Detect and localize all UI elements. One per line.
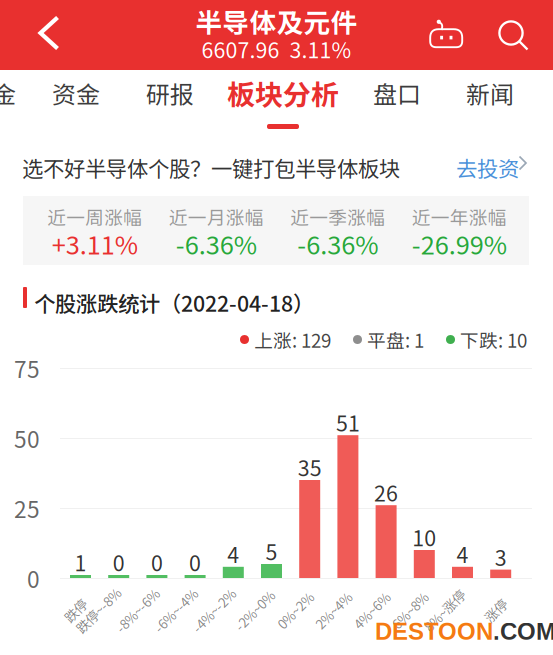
staticText: 涨停 [483, 601, 509, 620]
staticText: +3.11% [52, 225, 138, 262]
staticText: 75 [14, 352, 40, 384]
staticText: 板块分析 [227, 73, 339, 113]
staticText: 35 [298, 452, 322, 482]
staticText: -2%~0% [229, 601, 279, 620]
staticText: 选不好半导体个股？一键打包半导体板块 [22, 152, 400, 183]
button[interactable]: 新闻 [456, 70, 524, 133]
staticText: 51 [336, 407, 360, 438]
staticText: 个股涨跌统计（2022-04-18） [34, 287, 314, 318]
staticText: 26 [374, 477, 398, 508]
staticText: 跌停~-8% [70, 601, 127, 620]
staticText: 资金 [52, 76, 100, 110]
staticText: 研报 [146, 76, 194, 110]
staticText: 2%~4% [311, 601, 356, 620]
staticText: -6.36% [176, 225, 257, 262]
button[interactable]: 研报 [136, 70, 204, 133]
staticText: DESTOON [375, 618, 493, 645]
staticText: 盘口 [373, 76, 421, 110]
staticText: 1 [74, 547, 86, 577]
button[interactable]: 金 [0, 70, 26, 133]
button[interactable]: Assistant [414, 0, 476, 70]
staticText: 4 [456, 538, 468, 569]
staticText: 近一周涨幅 [47, 203, 142, 230]
staticText: -6.36% [297, 225, 378, 262]
staticText: 近一月涨幅 [169, 203, 264, 230]
staticText: 3 [495, 541, 507, 572]
staticText: -6%~-4% [148, 601, 203, 620]
staticText: 近一季涨幅 [290, 203, 385, 230]
staticText: 6607.96 3.11% [201, 34, 351, 64]
button[interactable]: 资金 [42, 70, 110, 133]
staticText: 平盘: 1 [367, 326, 424, 353]
staticText: 10 [412, 522, 436, 552]
staticText: 近一年涨幅 [412, 203, 507, 230]
staticText: 5 [265, 536, 277, 566]
staticText: 6%~8% [387, 601, 432, 620]
staticText: 0%~2% [273, 601, 318, 620]
button[interactable]: Search [481, 0, 545, 70]
staticText: 半导体及元件 [195, 2, 357, 40]
staticText: 上涨: 129 [254, 326, 331, 353]
button[interactable]: 盘口 [363, 70, 431, 133]
staticText: 跌停 [62, 601, 88, 620]
staticText: 去投资 [456, 152, 519, 183]
staticText: 25 [14, 492, 40, 524]
staticText: 4%~6% [349, 601, 394, 620]
button[interactable]: 选不好半导体个股？一键打包半导体板块 [0, 130, 553, 192]
staticText: -4%~-2% [186, 601, 241, 620]
staticText: 金 [0, 76, 16, 110]
staticText: 50 [14, 422, 40, 454]
staticText: 新闻 [466, 76, 514, 110]
button[interactable]: Back [0, 0, 90, 70]
staticText: 0 [151, 547, 163, 577]
button[interactable]: 板块分析 [220, 70, 346, 133]
staticText: 8%~涨停 [418, 601, 470, 620]
staticText: -26.99% [412, 225, 507, 262]
staticText: 下跌: 10 [460, 326, 527, 353]
staticText: 0 [27, 562, 40, 594]
staticText: .COM [493, 618, 553, 645]
staticText: 0 [189, 547, 201, 577]
staticText: 4 [227, 538, 239, 569]
staticText: 0 [113, 547, 125, 577]
staticText: -8%~-6% [110, 601, 165, 620]
